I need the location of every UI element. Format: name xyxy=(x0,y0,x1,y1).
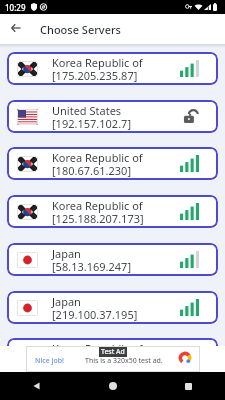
staticText: 10:29 xyxy=(5,2,26,13)
staticText: Korea Republic of [175.205.235.87] xyxy=(52,55,143,83)
button[interactable]: Korea Republic of [125.188.207.173] xyxy=(7,195,218,228)
staticText: Korea Republic of [125.188.207.173] xyxy=(52,198,144,226)
button[interactable]: Back xyxy=(7,19,24,36)
staticText: Choose Servers xyxy=(40,22,121,37)
button[interactable]: Korea Republic of [211.234.109.22] xyxy=(7,338,218,346)
staticText: Japan [58.13.169.247] xyxy=(52,246,132,274)
button[interactable]: Home xyxy=(104,377,122,395)
staticText: Japan [219.100.37.195] xyxy=(52,294,138,322)
staticText: Korea Republic of [180.67.61.230] xyxy=(52,150,143,178)
button[interactable]: Japan [219.100.37.195] xyxy=(7,291,218,324)
staticText: Korea Republic of [211.234.109.22] xyxy=(52,341,143,346)
staticText: United States [192.157.102.7] xyxy=(52,103,132,131)
button[interactable]: Korea Republic of [175.205.235.87] xyxy=(7,52,218,85)
button[interactable]: Japan [58.13.169.247] xyxy=(7,243,218,276)
staticText: Nice job! xyxy=(35,356,65,366)
button[interactable]: Back xyxy=(28,377,46,395)
other: AdMob xyxy=(178,351,192,365)
button[interactable]: United States [192.157.102.7] xyxy=(7,100,218,133)
button[interactable]: Nice job! xyxy=(26,346,200,372)
button[interactable]: Recents xyxy=(179,377,197,395)
staticText: This is a 320x50 test ad. xyxy=(85,356,163,366)
button[interactable]: Korea Republic of [180.67.61.230] xyxy=(7,147,218,180)
staticText: Test Ad xyxy=(101,347,125,357)
